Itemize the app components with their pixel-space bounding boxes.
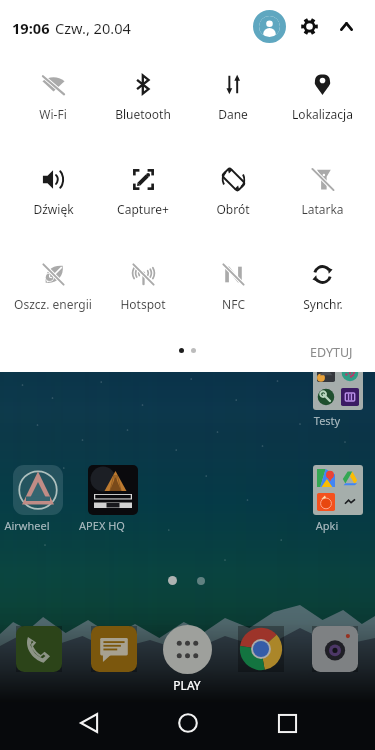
button[interactable]: Airwheel <box>13 465 63 533</box>
button[interactable]: Lokalizacja <box>278 62 367 122</box>
button[interactable]: Chrome <box>238 626 284 672</box>
button[interactable]: Synchr. <box>278 252 367 312</box>
button[interactable]: Latarka <box>278 157 367 217</box>
staticText: Czw., 20.04 <box>55 18 131 38</box>
button[interactable]: Camera <box>312 626 358 672</box>
staticText: EDYTUJ <box>310 344 353 361</box>
staticText: Wi-Fi <box>39 106 67 122</box>
button[interactable]: Back <box>65 699 113 747</box>
button[interactable]: Phone <box>16 626 62 672</box>
button[interactable]: Obrót <box>188 157 278 217</box>
button[interactable]: Home <box>164 699 212 747</box>
button[interactable]: Recents <box>263 699 311 747</box>
button[interactable]: Dane <box>188 62 278 122</box>
staticText: Latarka <box>301 201 344 217</box>
button[interactable]: Account <box>251 8 287 44</box>
button[interactable]: Bluetooth <box>98 62 188 122</box>
button[interactable]: Capture+ <box>98 157 188 217</box>
button[interactable]: Dźwięk <box>8 157 98 217</box>
staticText: PLAY <box>160 677 214 693</box>
button[interactable]: Testy <box>313 360 363 428</box>
staticText: NFC <box>222 296 245 312</box>
staticText: Apki <box>302 518 352 533</box>
staticText: Lokalizacja <box>292 106 353 122</box>
staticText: Bluetooth <box>115 106 171 122</box>
button[interactable]: APEX HQ <box>88 465 138 533</box>
staticText: Dźwięk <box>33 201 74 217</box>
button[interactable]: Wi-Fi <box>8 62 98 122</box>
staticText: Airwheel <box>2 518 52 533</box>
button[interactable]: Settings <box>291 8 327 44</box>
staticText: 19:06 <box>12 18 50 38</box>
button[interactable]: Collapse panel <box>328 8 364 44</box>
button[interactable]: Apps <box>163 625 212 674</box>
button[interactable]: Messages <box>91 626 137 672</box>
staticText: Testy <box>302 413 352 428</box>
button[interactable]: NFC <box>188 252 278 312</box>
staticText: Synchr. <box>303 296 343 312</box>
staticText: Dane <box>218 106 248 122</box>
button[interactable]: Hotspot <box>98 252 188 312</box>
staticText: Hotspot <box>120 296 166 312</box>
staticText: APEX HQ <box>77 518 127 533</box>
staticText: Capture+ <box>117 201 169 217</box>
staticText: Oszcz. energii <box>14 296 92 312</box>
button[interactable]: Apki <box>313 465 363 533</box>
staticText: Obrót <box>216 201 250 217</box>
button[interactable]: Oszcz. energii <box>8 252 98 312</box>
button[interactable]: EDYTUJ <box>306 340 357 365</box>
